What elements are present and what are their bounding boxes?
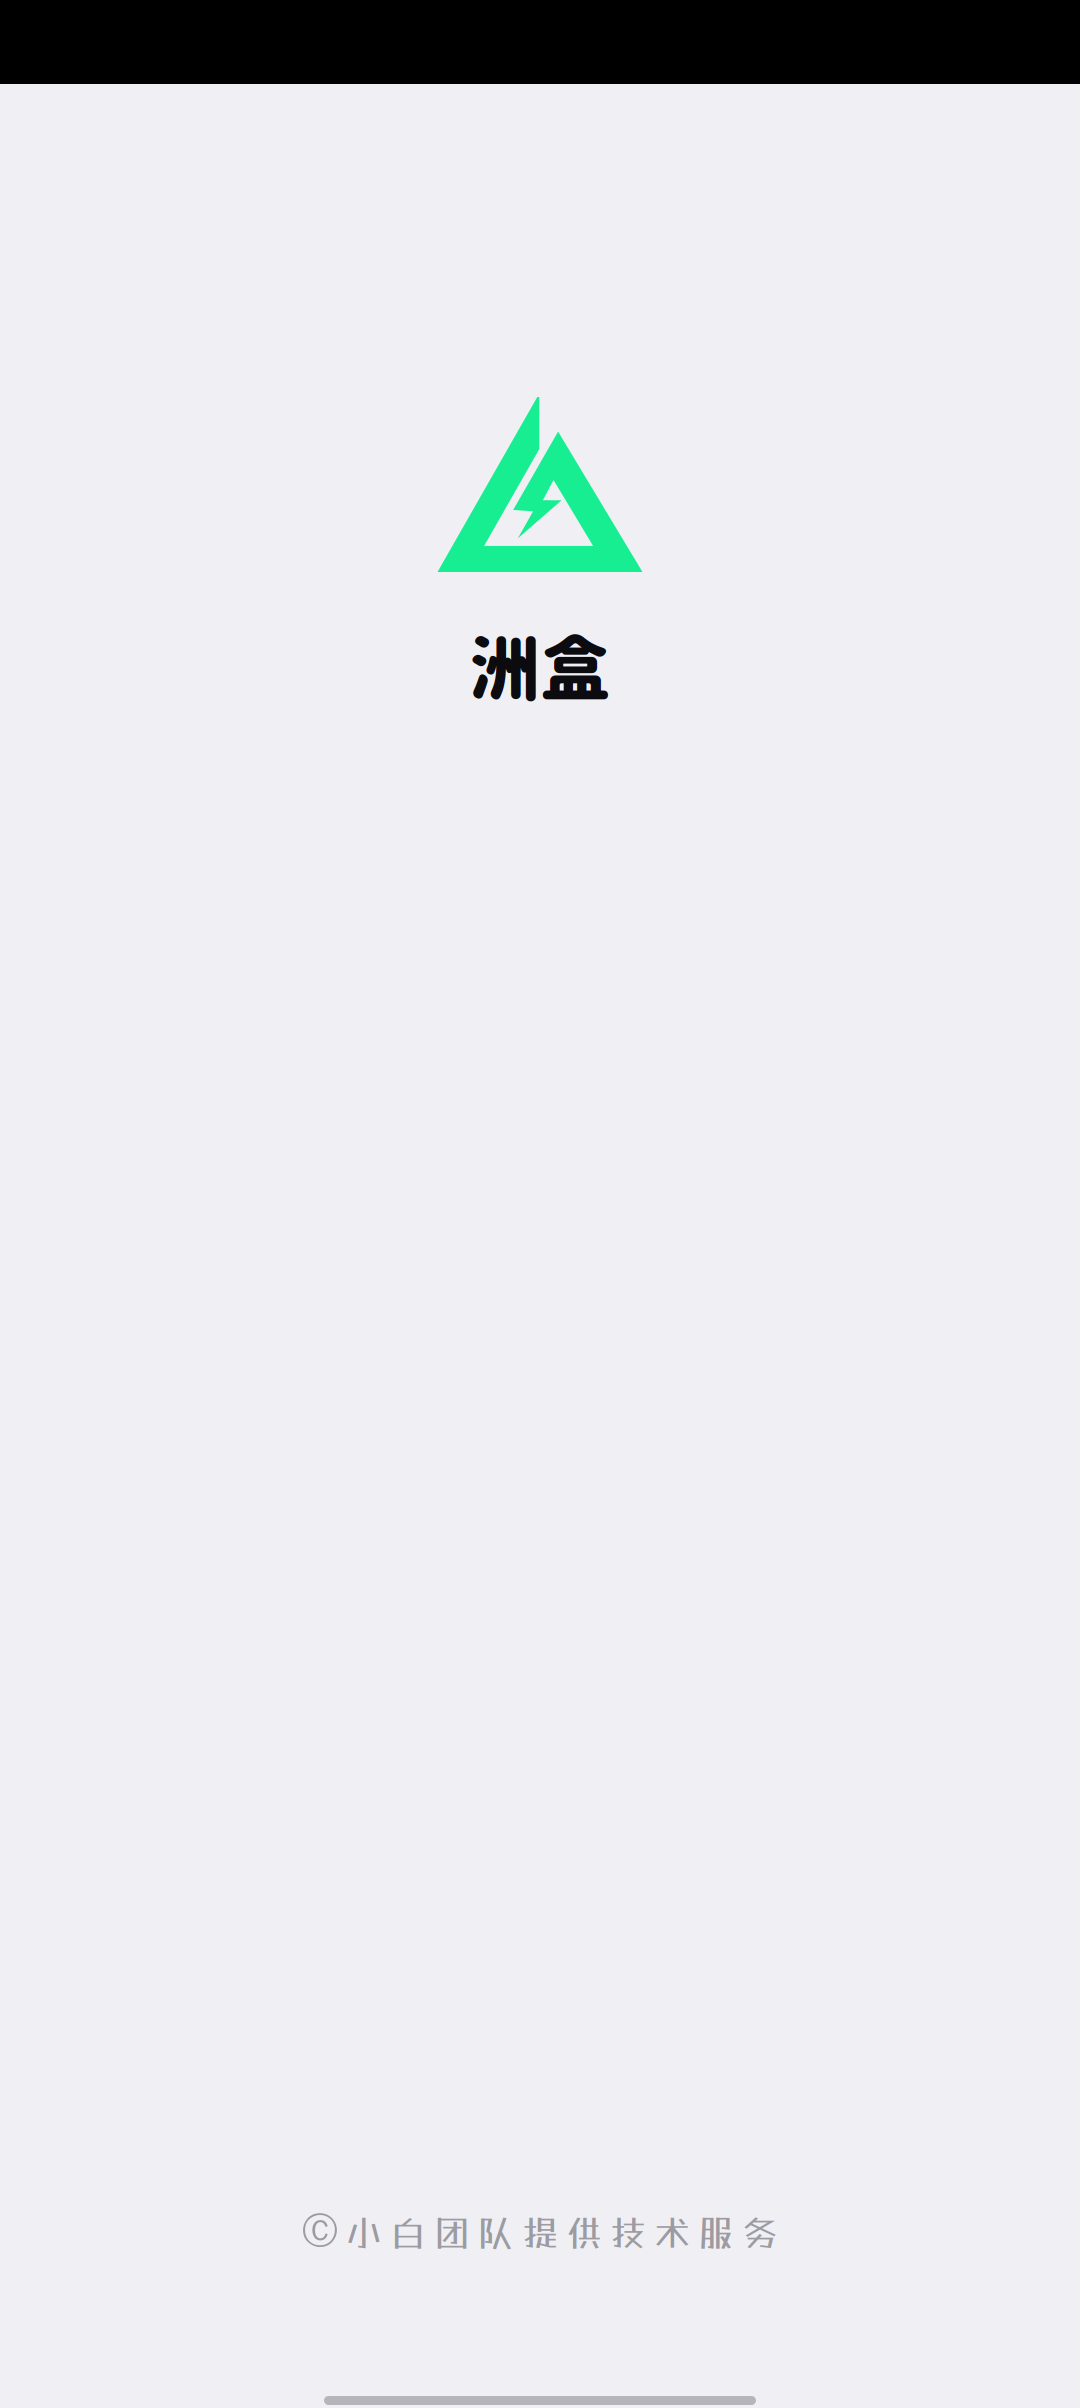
staticText: Ⓒ小白团队提供技术服务	[302, 2208, 778, 2254]
staticText: 洲盒	[469, 626, 611, 709]
